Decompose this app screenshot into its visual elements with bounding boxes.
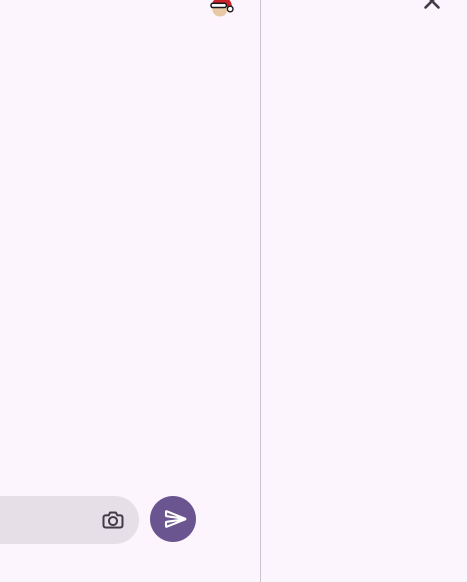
button[interactable]: Send	[150, 496, 196, 542]
button[interactable]: Message	[0, 496, 139, 544]
button[interactable]: Close	[412, 0, 452, 21]
button[interactable]: Profile	[208, 0, 236, 21]
